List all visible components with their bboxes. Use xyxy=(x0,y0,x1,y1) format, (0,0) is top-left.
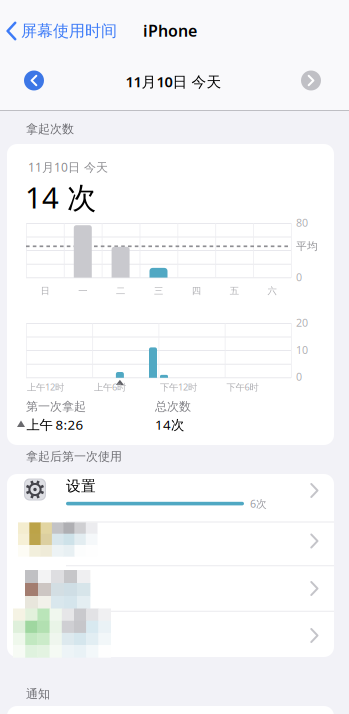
staticText: 80 xyxy=(296,215,308,230)
staticText: 0 xyxy=(296,270,302,284)
staticText: 二 xyxy=(116,285,125,297)
staticText: 上午 8:26 xyxy=(26,416,83,433)
staticText: 上午12时 xyxy=(27,381,64,393)
staticText: 10 xyxy=(296,343,308,357)
staticText: 拿起后第一次使用 xyxy=(26,449,122,464)
staticText: 14 次 xyxy=(25,177,96,216)
staticText: 下午6时 xyxy=(226,381,258,393)
staticText: 平均 xyxy=(296,240,318,253)
button[interactable]: 后一天 xyxy=(297,66,325,94)
button[interactable]: 屏幕使用时间 xyxy=(5,16,123,46)
staticText: 屏幕使用时间 xyxy=(21,21,117,41)
button[interactable]: App 3 xyxy=(7,565,334,611)
staticText: 一 xyxy=(78,285,87,297)
staticText: 六 xyxy=(267,285,276,297)
staticText: 拿起次数 xyxy=(26,122,74,136)
staticText: 20 xyxy=(296,315,308,330)
staticText: 四 xyxy=(192,285,201,297)
button[interactable]: App 2 xyxy=(7,522,334,566)
staticText: iPhone xyxy=(143,20,197,41)
staticText: 0 xyxy=(296,369,302,384)
staticText: 日 xyxy=(40,285,49,297)
staticText: 上午6时 xyxy=(94,381,126,393)
button[interactable]: App 4 xyxy=(7,611,334,657)
staticText: 设置 xyxy=(66,477,96,495)
staticText: 总次数 xyxy=(155,399,191,414)
staticText: 11月10日 今天 xyxy=(125,72,221,91)
staticText: 三 xyxy=(154,285,163,297)
staticText: 通知 xyxy=(26,687,50,701)
staticText: 11月10日 今天 xyxy=(28,159,108,175)
staticText: 下午12时 xyxy=(160,381,197,393)
button[interactable]: 前一天 xyxy=(20,66,48,94)
staticText: 6次 xyxy=(250,496,267,511)
staticText: 第一次拿起 xyxy=(26,399,86,414)
button[interactable]: 设置 xyxy=(7,474,334,522)
staticText: 14次 xyxy=(155,416,184,433)
staticText: 五 xyxy=(230,285,239,297)
